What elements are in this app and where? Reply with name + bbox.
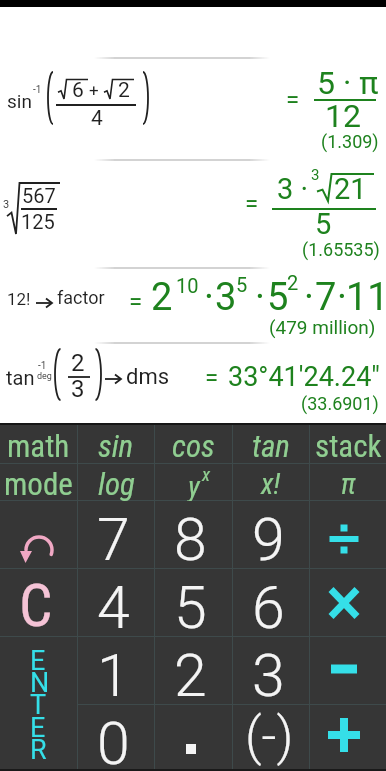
staticText: 7 [315,275,337,320]
staticText: 5 [315,207,332,241]
button[interactable]: math [0,425,77,463]
button[interactable] [0,343,386,423]
staticText: 2 [287,271,299,294]
staticText: T [30,689,47,721]
button[interactable]: sin [78,425,154,463]
button[interactable]: 6 [233,569,309,636]
staticText: 2 [118,78,130,103]
staticText: 6 [252,573,285,640]
staticText: 4 [91,106,103,131]
staticText: N [30,667,50,699]
staticText: tan [6,366,35,389]
button[interactable] [155,705,232,771]
staticText: cos [172,428,215,464]
staticText: -1 [33,84,42,96]
staticText: 3 [71,375,85,403]
staticText: 1 [97,641,130,708]
button[interactable]: 3 [233,637,309,704]
staticText: · [304,275,314,320]
staticText: 0 [97,709,130,771]
staticText: 4 [97,573,130,640]
button[interactable]: 9 [233,501,309,568]
button[interactable] [310,569,386,636]
button[interactable]: x! [233,464,309,500]
staticText: E [30,712,46,744]
staticText: 7 [97,505,130,572]
staticText: (-) [245,706,294,767]
staticText: stack [315,428,382,464]
button[interactable]: 1 [78,637,154,704]
button[interactable] [0,58,386,160]
button[interactable]: 8 [155,501,232,568]
staticText: 5 · π [317,64,379,102]
staticText: 5 [236,273,248,296]
staticText: y [188,470,200,504]
staticText: R [30,734,47,766]
staticText: 3 · [277,172,309,206]
button[interactable] [0,501,77,568]
staticText: (33.6901) [301,393,379,414]
staticText: 10 [176,274,199,297]
staticText: = [245,190,259,218]
button[interactable]: y [155,464,232,500]
button[interactable]: 2 [155,637,232,704]
button[interactable]: C [0,569,77,636]
button[interactable]: mode [0,464,77,500]
button[interactable]: (-) [233,705,309,771]
staticText: x [202,463,211,485]
staticText: (1.309) [321,131,379,152]
staticText: 8 [174,505,207,572]
button[interactable]: 5 [155,569,232,636]
button[interactable]: cos [155,425,232,463]
staticText: 2 [174,641,207,708]
button[interactable]: 4 [78,569,154,636]
staticText: 567 [22,184,56,207]
staticText: factor [57,287,105,308]
button[interactable] [0,268,386,343]
button[interactable] [310,705,386,771]
button[interactable]: stack [310,425,386,463]
staticText: 3 [252,641,285,708]
staticText: log [98,466,135,502]
staticText: 5 [174,573,207,640]
staticText: = [286,86,300,114]
staticText: 2 [71,349,85,377]
staticText: = [129,288,143,316]
staticText: dms [126,364,170,390]
button[interactable] [0,160,386,268]
button[interactable]: π [310,464,386,500]
staticText: C [19,571,53,638]
staticText: x! [261,467,281,501]
button[interactable] [310,501,386,568]
staticText: 21 [334,172,367,206]
staticText: (479 million) [269,316,376,338]
staticText: 12! [7,289,31,309]
staticText: 3 [311,166,320,184]
staticText: 9 [252,505,285,572]
staticText: 125 [21,210,55,233]
staticText: 33°41'24.24″ [228,361,380,393]
staticText: math [7,428,70,464]
button[interactable] [310,637,386,704]
staticText: 2 [151,275,173,320]
staticText: · [337,275,347,320]
staticText: 6 [72,78,84,103]
staticText: sin [98,428,134,464]
staticText: deg [37,371,52,382]
button[interactable]: E [0,637,77,771]
staticText: mode [4,466,73,502]
button[interactable]: tan [233,425,309,463]
staticText: 11 [346,275,386,320]
staticText: π [341,467,356,501]
staticText: tan [252,428,290,464]
staticText: + [89,80,99,100]
staticText: E [30,645,46,677]
button[interactable]: log [78,464,154,500]
button[interactable]: 0 [78,705,154,771]
staticText: -1 [38,360,47,372]
staticText: = [205,364,219,392]
staticText: 3 [3,198,10,211]
staticText: 5 [267,275,289,320]
button[interactable]: 7 [78,501,154,568]
staticText: · [204,275,214,320]
